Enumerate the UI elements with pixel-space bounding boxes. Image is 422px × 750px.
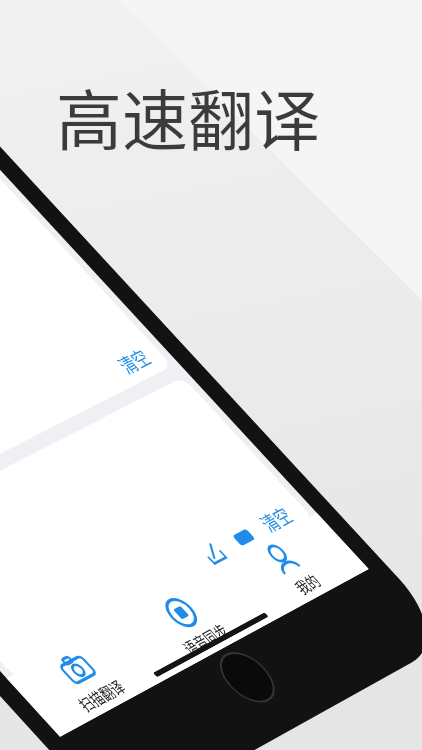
button[interactable]: 清空: [0, 0, 173, 520]
button[interactable]: Handwriting input: [0, 377, 315, 680]
staticText: 扫描翻译: [71, 674, 130, 716]
button[interactable]: 语音同步: [112, 567, 268, 680]
staticText: 语音同步: [176, 618, 234, 659]
staticText: 我的: [288, 569, 326, 598]
button[interactable]: Handwriting input: [194, 537, 233, 570]
button[interactable]: Keyboard input: [225, 521, 263, 554]
staticText: 高速翻译: [56, 68, 320, 164]
button[interactable]: 扫描翻译: [7, 622, 165, 737]
button[interactable]: 清空: [111, 343, 158, 380]
button[interactable]: 我的: [215, 513, 369, 624]
button[interactable]: 清空: [253, 500, 300, 538]
